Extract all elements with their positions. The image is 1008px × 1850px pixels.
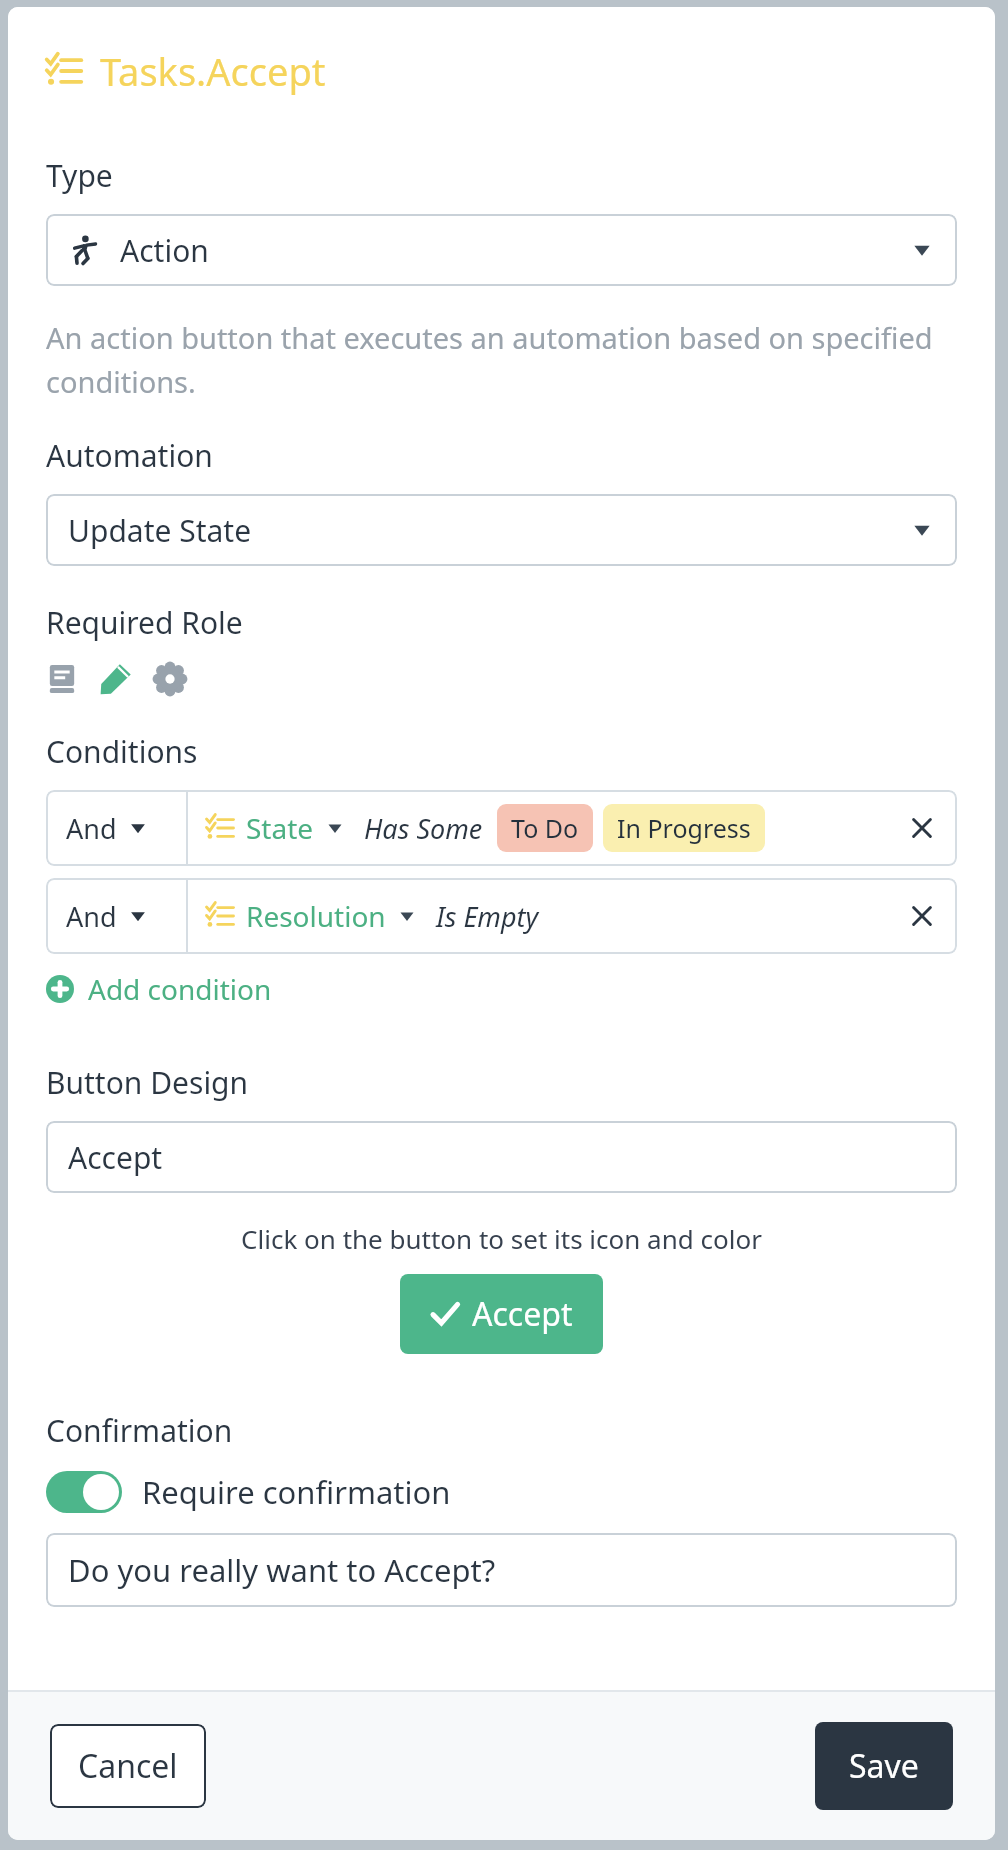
button[interactable]: Save <box>815 1722 953 1810</box>
staticText: Required Role <box>46 602 243 643</box>
staticText: An action button that executes an automa… <box>46 318 957 401</box>
button[interactable]: To Do <box>497 804 593 852</box>
button[interactable]: Accept <box>400 1274 603 1354</box>
staticText: And <box>66 898 117 935</box>
staticText: Resolution <box>246 897 386 935</box>
staticText: Require confirmation <box>142 1471 451 1513</box>
staticText: Button Design <box>46 1062 249 1103</box>
button[interactable]: Do you really want to Accept? <box>46 1533 957 1607</box>
staticText: And <box>66 810 117 847</box>
button[interactable]: Remove condition <box>887 790 957 866</box>
staticText: Save <box>849 1744 919 1788</box>
button[interactable]: Require confirmation <box>46 1471 451 1513</box>
button[interactable]: And <box>46 790 186 866</box>
staticText: Confirmation <box>46 1410 233 1451</box>
staticText: Do you really want to Accept? <box>68 1549 496 1591</box>
button[interactable]: Reader role <box>46 663 78 695</box>
button[interactable]: And <box>46 878 186 954</box>
staticText: Automation <box>46 435 213 476</box>
button[interactable]: Resolution <box>246 897 420 935</box>
button[interactable]: Editor role <box>100 663 132 695</box>
button[interactable]: Cancel <box>50 1724 206 1808</box>
button[interactable]: State <box>246 809 348 847</box>
button[interactable]: Add condition <box>46 970 272 1008</box>
staticText: Is Empty <box>436 898 539 935</box>
staticText: Action <box>120 230 209 271</box>
button[interactable]: Accept <box>46 1121 957 1193</box>
staticText: Type <box>46 155 113 196</box>
staticText: Update State <box>68 510 252 551</box>
button[interactable]: Update State <box>46 494 957 566</box>
button[interactable]: Action <box>46 214 957 286</box>
staticText: Click on the button to set its icon and … <box>46 1221 957 1256</box>
staticText: Accept <box>472 1292 573 1336</box>
button[interactable]: Admin role <box>154 663 186 695</box>
button[interactable]: In Progress <box>603 804 765 852</box>
staticText: Has Some <box>364 810 483 847</box>
staticText: Conditions <box>46 731 198 772</box>
staticText: Add condition <box>88 970 272 1008</box>
staticText: Tasks.Accept <box>100 45 326 97</box>
staticText: To Do <box>511 811 579 845</box>
staticText: State <box>246 809 314 847</box>
staticText: In Progress <box>617 811 751 845</box>
button[interactable]: Remove condition <box>887 878 957 954</box>
staticText: Cancel <box>78 1744 178 1788</box>
staticText: Accept <box>68 1137 163 1178</box>
